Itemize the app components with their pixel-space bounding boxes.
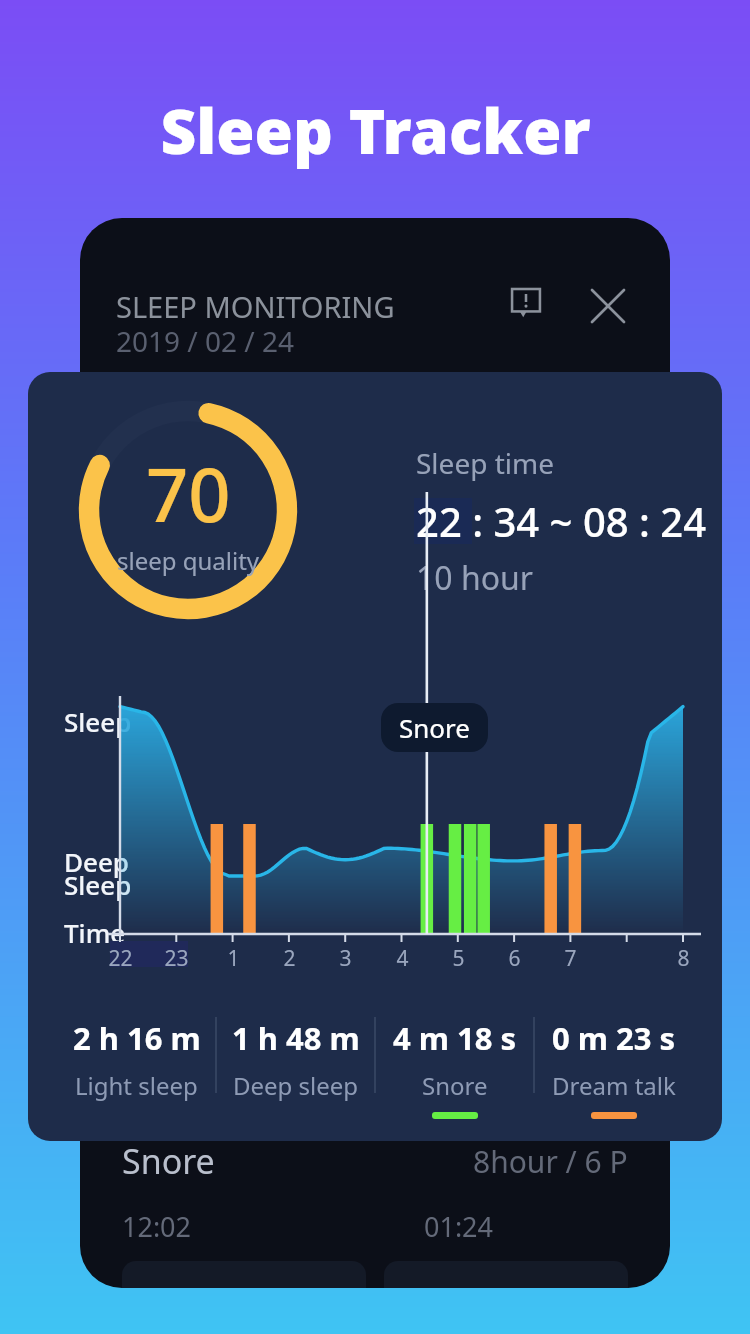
staticText: Sleep time: [416, 444, 554, 482]
staticText: 22: [108, 944, 133, 973]
staticText: Light sleep: [75, 1069, 198, 1102]
staticText: 0 m 23 s: [552, 1017, 676, 1059]
staticText: 22 : 34 ~ 08 : 24: [416, 494, 707, 548]
staticText: 4 m 18 s: [393, 1017, 517, 1059]
staticText: Time: [64, 915, 126, 950]
staticText: 8hour / 6 P: [473, 1141, 628, 1182]
staticText: sleep quality: [117, 544, 260, 577]
button[interactable]: 4 m 18 s: [376, 1017, 533, 1119]
staticText: 2019 / 02 / 24: [116, 322, 295, 360]
button[interactable]: 0 m 23 s: [535, 1017, 692, 1119]
staticText: 2: [283, 944, 296, 973]
staticText: 1 h 48 m: [232, 1017, 360, 1059]
staticText: 5: [452, 944, 465, 973]
staticText: Snore: [122, 1138, 215, 1184]
staticText: 8: [677, 944, 690, 973]
staticText: 4: [396, 944, 409, 973]
staticText: 23: [164, 944, 189, 973]
staticText: Snore: [399, 710, 470, 745]
staticText: Sleep Tracker: [160, 88, 591, 172]
staticText: Dream talk: [552, 1069, 676, 1102]
staticText: Sleep: [64, 704, 132, 739]
staticText: Deep sleep: [233, 1069, 359, 1102]
staticText: Snore: [422, 1069, 488, 1102]
button[interactable]: Close: [582, 280, 634, 332]
staticText: 70: [146, 443, 231, 544]
button[interactable]: Feedback: [500, 280, 552, 332]
staticText: 01:24: [424, 1208, 494, 1245]
staticText: 10 hour: [416, 556, 534, 600]
staticText: 12:02: [122, 1208, 192, 1245]
button[interactable]: Snore: [381, 703, 488, 752]
button[interactable]: 2 h 16 m: [58, 1017, 215, 1102]
staticText: SLEEP MONITORING: [116, 287, 395, 326]
staticText: 6: [508, 944, 521, 973]
staticText: Deep: [64, 844, 129, 879]
staticText: 2 h 16 m: [73, 1017, 201, 1059]
staticText: 1: [227, 944, 240, 973]
staticText: Sleep: [64, 867, 132, 902]
staticText: 3: [339, 944, 352, 973]
button[interactable]: 1 h 48 m: [217, 1017, 374, 1102]
staticText: 7: [564, 944, 577, 973]
